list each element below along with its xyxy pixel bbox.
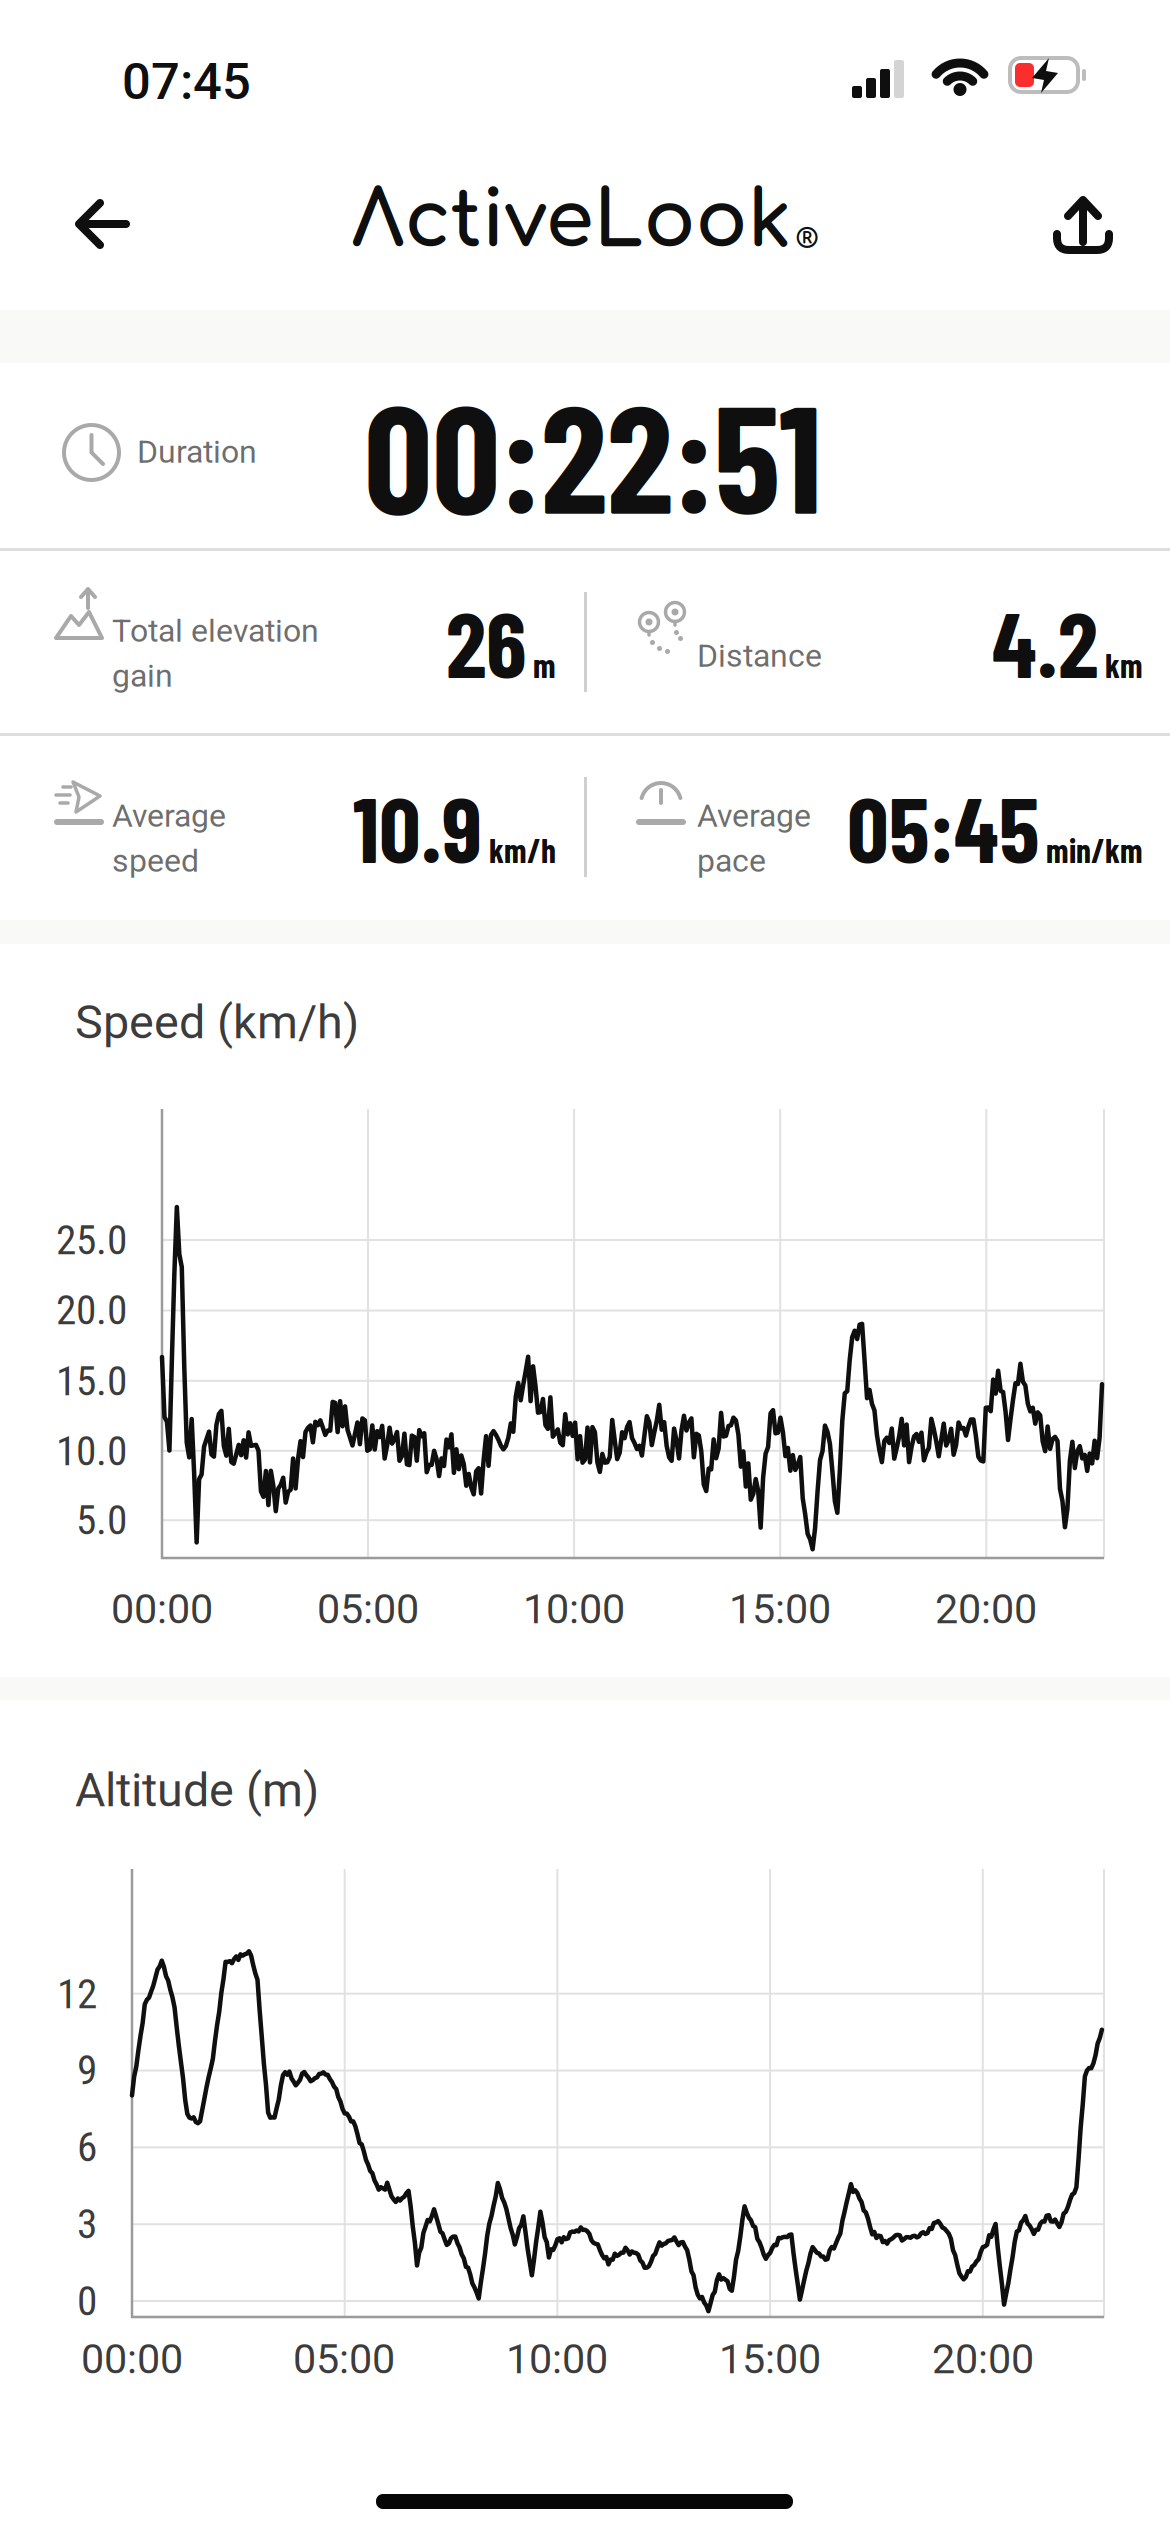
staticText: 9: [77, 2046, 97, 2094]
staticText: Altitude (m): [75, 1763, 319, 1818]
staticText: ΛctiveLook: [351, 178, 791, 264]
staticText: Duration: [137, 433, 257, 470]
staticText: km/h: [489, 830, 556, 870]
staticText: 26: [446, 586, 526, 696]
staticText: 3: [77, 2200, 97, 2248]
staticText: 10:00: [506, 2335, 608, 2383]
staticText: 15:00: [729, 1585, 831, 1633]
staticText: 00:00: [81, 2335, 183, 2383]
staticText: km: [1105, 645, 1143, 685]
staticText: ®: [795, 224, 818, 254]
staticText: 25.0: [56, 1216, 127, 1264]
staticText: 6: [77, 2123, 97, 2171]
staticText: Speed (km/h): [75, 995, 359, 1050]
staticText: gain: [112, 657, 173, 694]
button[interactable]: Share: [1055, 196, 1111, 254]
staticText: 10.9: [353, 771, 482, 881]
staticText: 00:00: [111, 1585, 213, 1633]
staticText: 4.2: [992, 586, 1098, 696]
staticText: 10.0: [56, 1427, 127, 1475]
staticText: 00:22:51: [364, 363, 822, 544]
staticText: 05:00: [293, 2335, 395, 2383]
staticText: Distance: [697, 637, 822, 674]
staticText: Average: [112, 797, 226, 834]
staticText: min/km: [1046, 830, 1143, 870]
staticText: 12: [57, 1970, 97, 2018]
staticText: 10:00: [523, 1585, 625, 1633]
staticText: 20:00: [932, 2335, 1034, 2383]
staticText: 20:00: [935, 1585, 1037, 1633]
staticText: 05:45: [847, 771, 1039, 881]
staticText: 05:00: [317, 1585, 419, 1633]
staticText: 07:45: [122, 52, 251, 111]
staticText: 15:00: [719, 2335, 821, 2383]
staticText: m: [533, 645, 556, 685]
staticText: Total elevation: [112, 612, 319, 649]
button[interactable]: Back: [50, 194, 150, 254]
staticText: 15.0: [56, 1357, 127, 1405]
staticText: 20.0: [56, 1286, 127, 1334]
staticText: Average: [697, 797, 811, 834]
staticText: speed: [112, 842, 199, 879]
staticText: pace: [697, 842, 766, 879]
staticText: 0: [77, 2277, 97, 2325]
staticText: 5.0: [76, 1496, 127, 1544]
